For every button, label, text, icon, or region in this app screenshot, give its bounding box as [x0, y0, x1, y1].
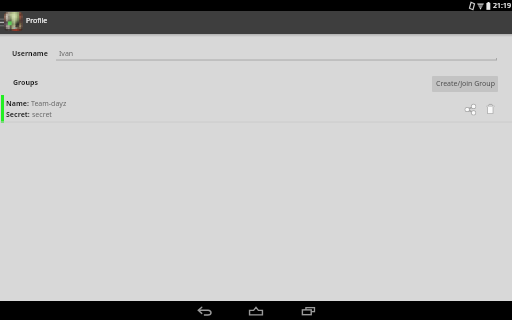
staticText: Name: — [6, 99, 31, 109]
button[interactable]: Navigate up — [4, 12, 23, 31]
button[interactable]: Share group — [463, 102, 477, 116]
staticText: Username — [12, 49, 48, 59]
staticText: 21:19 — [493, 1, 511, 11]
staticText: Team-dayz — [31, 99, 67, 109]
staticText: Ivan — [59, 49, 74, 59]
button[interactable]: Recent apps — [288, 301, 328, 320]
staticText: Groups — [13, 78, 38, 88]
button[interactable]: Back — [185, 301, 225, 320]
staticText: secret — [32, 110, 52, 120]
button[interactable]: Name: — [0, 95, 512, 123]
button[interactable]: Create/Join Group — [432, 76, 498, 92]
staticText: Profile — [26, 16, 48, 26]
button[interactable]: Home — [236, 301, 276, 320]
button[interactable]: Delete group — [483, 102, 497, 116]
staticText: Secret: — [6, 110, 32, 120]
staticText: Create/Join Group — [436, 79, 495, 89]
